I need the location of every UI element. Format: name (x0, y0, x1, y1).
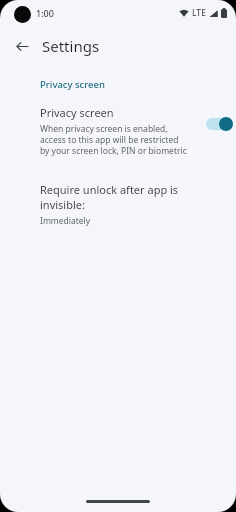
staticText: Settings (42, 36, 100, 56)
button[interactable]: Back (6, 30, 38, 62)
staticText: Require unlock after app is invisible: (40, 182, 222, 212)
button[interactable]: Privacy screen toggle (206, 114, 236, 134)
staticText: LTE (192, 7, 206, 19)
button[interactable]: Privacy screen (0, 103, 236, 158)
staticText: Privacy screen (40, 78, 105, 91)
staticText: 1:00 (36, 7, 54, 19)
button[interactable]: Require unlock after app is invisible: (0, 180, 236, 229)
staticText: When privacy screen is enabled, access t… (40, 123, 187, 156)
staticText: Immediately (40, 215, 91, 227)
staticText: Privacy screen (40, 105, 114, 120)
